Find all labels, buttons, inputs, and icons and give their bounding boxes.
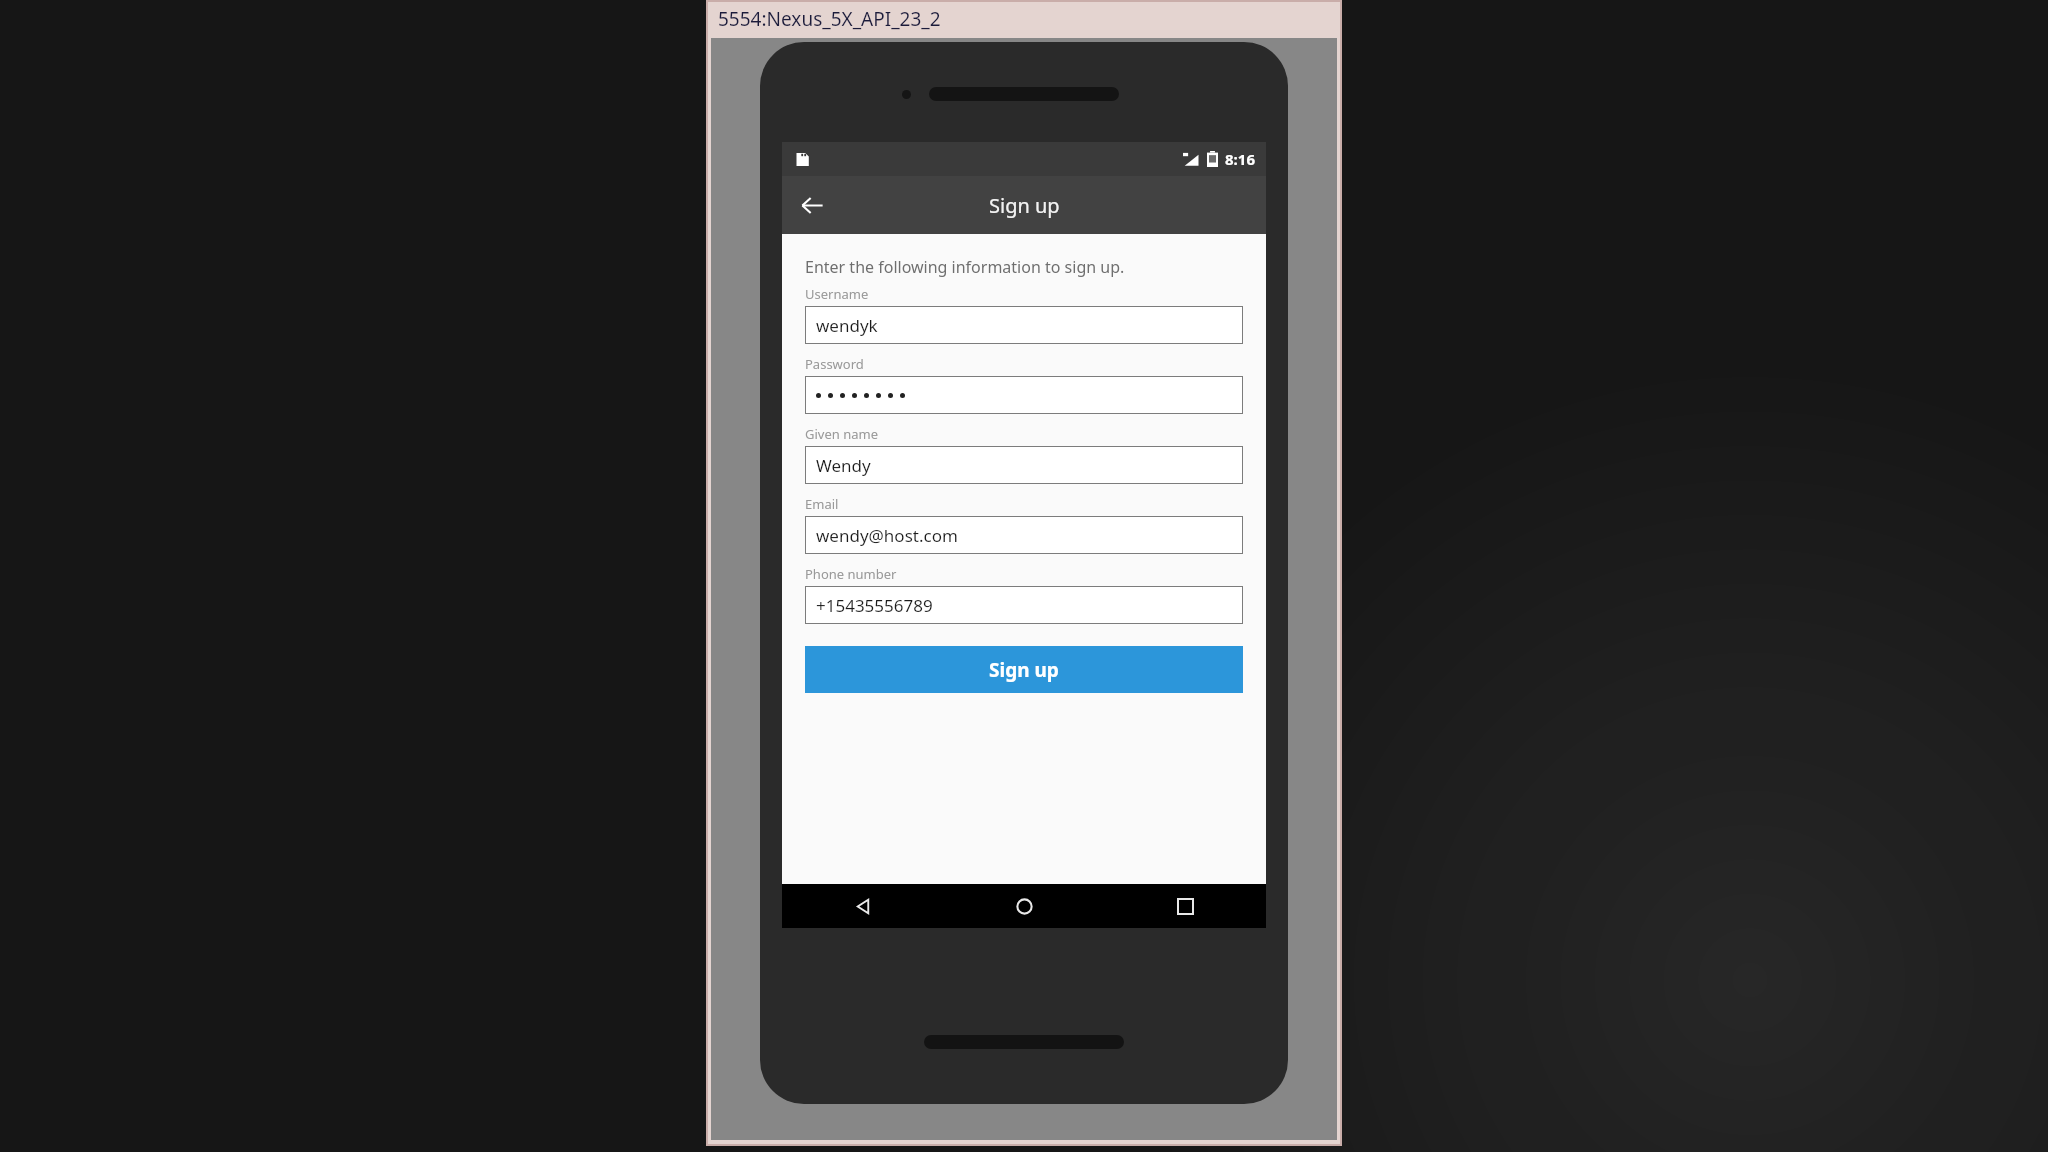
staticText: Sign up (989, 192, 1060, 219)
button[interactable]: Home (944, 884, 1105, 928)
staticText: Email (805, 495, 839, 513)
button[interactable]: wendy@host.com (805, 516, 1243, 554)
staticText: 8:16 (1225, 149, 1255, 169)
button[interactable]: Sign up (805, 646, 1243, 693)
staticText: +15435556789 (816, 594, 933, 617)
staticText: Wendy (816, 454, 871, 477)
button[interactable]: Back (788, 181, 836, 229)
staticText: Enter the following information to sign … (805, 256, 1125, 278)
button[interactable]: Back (782, 884, 944, 928)
button[interactable]: +15435556789 (805, 586, 1243, 624)
staticText: Phone number (805, 565, 897, 583)
staticText: Sign up (989, 657, 1059, 683)
staticText: Given name (805, 425, 878, 443)
staticText: Username (805, 285, 869, 303)
button[interactable]: wendyk (805, 306, 1243, 344)
staticText: Password (805, 355, 864, 373)
button[interactable]: Wendy (805, 446, 1243, 484)
button[interactable]: Recent apps (1105, 884, 1266, 928)
staticText: wendy@host.com (816, 524, 958, 547)
staticText: wendyk (816, 314, 878, 337)
button[interactable] (805, 376, 1243, 414)
staticText: 5554:Nexus_5X_API_23_2 (718, 6, 941, 32)
